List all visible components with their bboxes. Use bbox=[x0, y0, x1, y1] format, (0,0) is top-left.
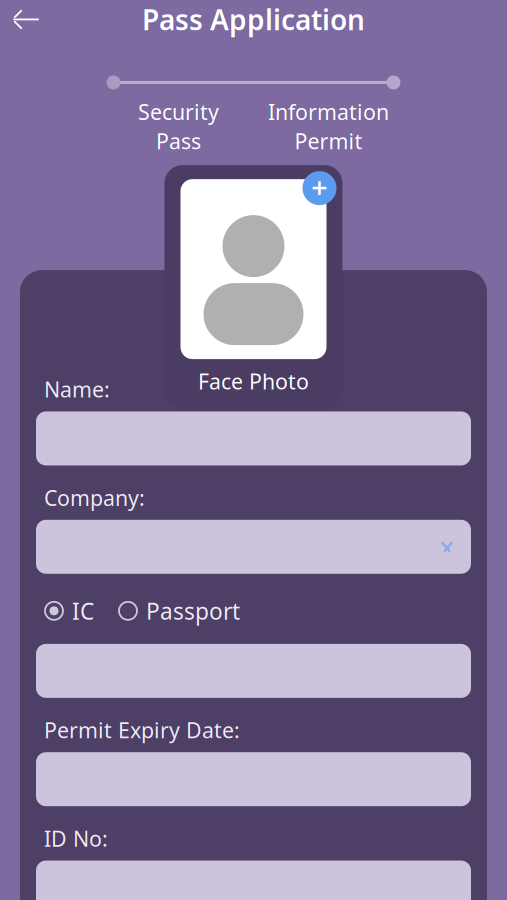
staticText: IC bbox=[72, 596, 94, 626]
staticText: Pass Application bbox=[142, 1, 365, 38]
button[interactable]: Company, select bbox=[36, 520, 471, 574]
button[interactable]: Back bbox=[0, 0, 52, 43]
staticText: ID No: bbox=[44, 824, 108, 852]
staticText: Passport bbox=[146, 596, 240, 626]
button[interactable]: Text field bbox=[36, 860, 471, 900]
staticText: Pass bbox=[156, 127, 201, 155]
staticText: Security bbox=[138, 97, 219, 126]
button[interactable]: Text field bbox=[36, 411, 471, 465]
button[interactable]: Text field bbox=[36, 752, 471, 806]
staticText: Information bbox=[268, 97, 389, 126]
button[interactable]: IC bbox=[44, 592, 94, 630]
staticText: Face Photo bbox=[198, 367, 309, 395]
button[interactable]: Add face photo bbox=[164, 165, 342, 409]
staticText: Permit Expiry Date: bbox=[44, 716, 240, 744]
button[interactable]: Text field bbox=[36, 644, 471, 698]
staticText: Name: bbox=[44, 375, 110, 403]
staticText: Company: bbox=[44, 483, 145, 512]
staticText: Permit bbox=[294, 127, 362, 155]
button[interactable]: Passport bbox=[118, 592, 240, 630]
